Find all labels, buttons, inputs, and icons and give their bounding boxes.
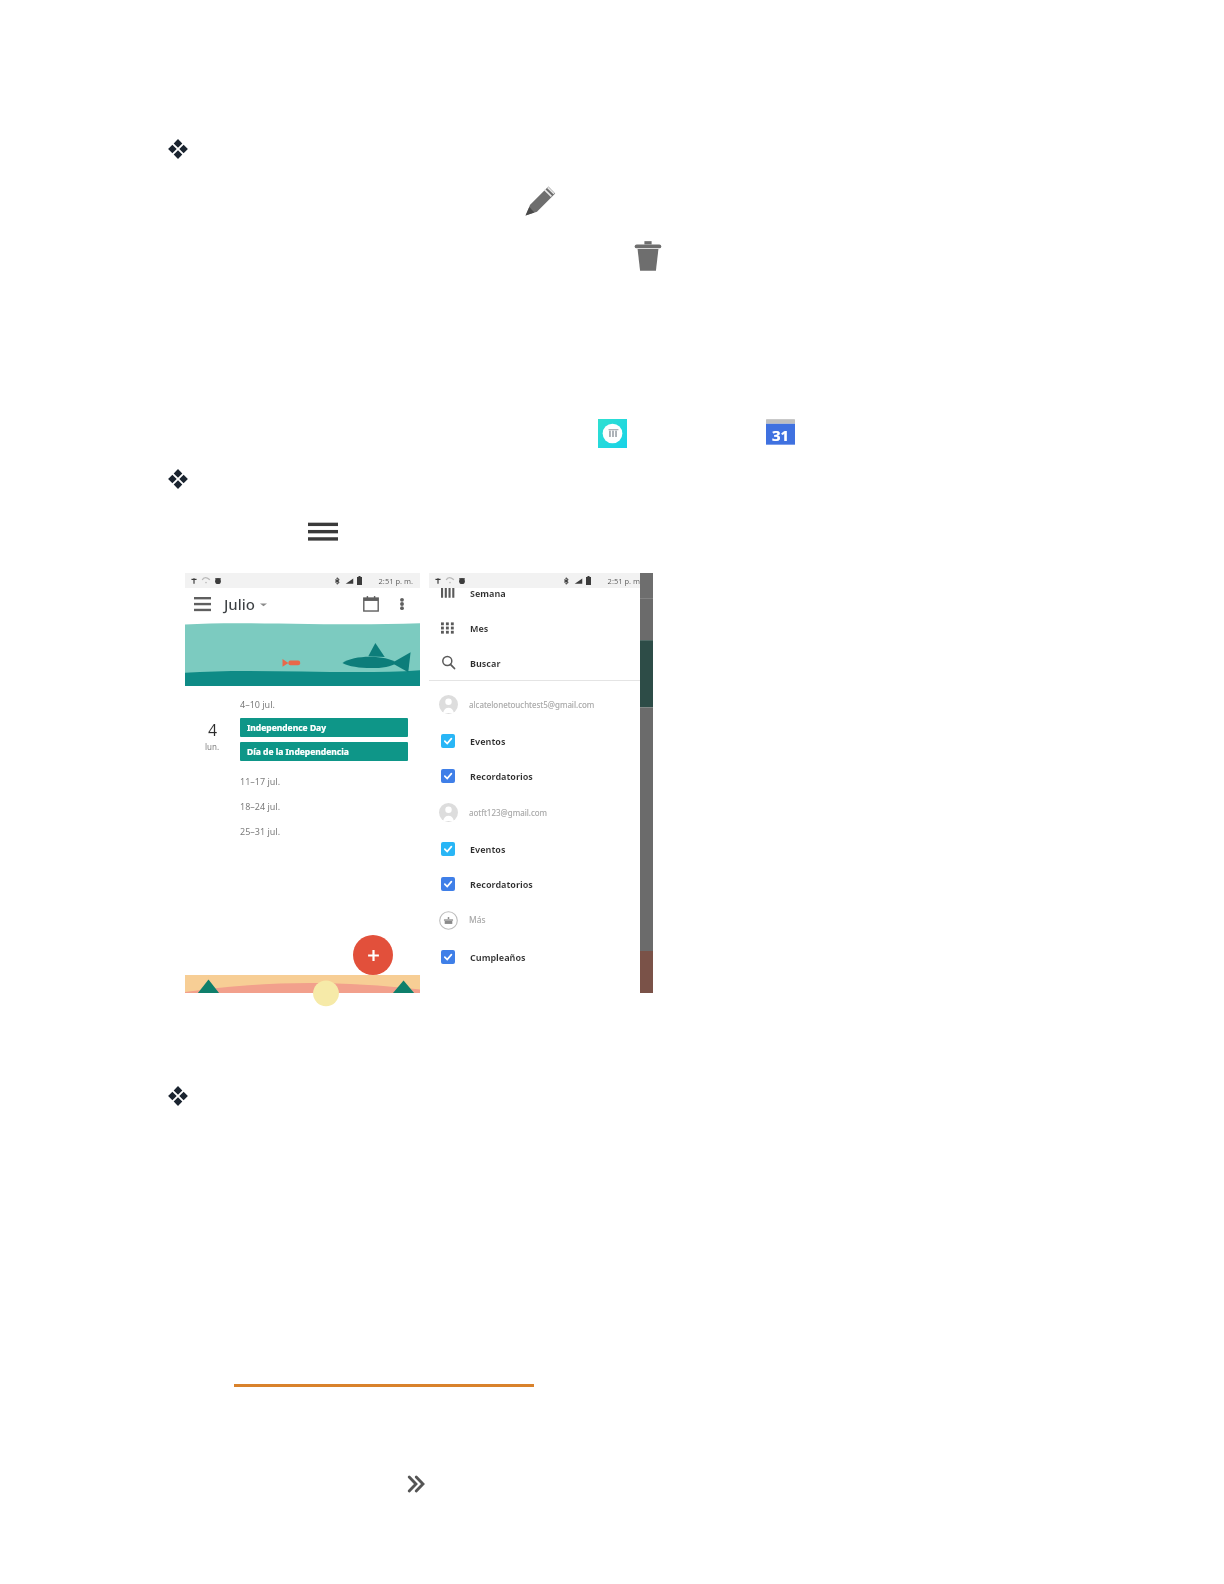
staticText: 25–31 jul.	[240, 825, 281, 837]
staticText: 4	[208, 719, 218, 741]
button[interactable]: Calendar app	[598, 419, 627, 448]
button[interactable]: Create event	[353, 935, 393, 975]
button[interactable]: Edit	[521, 182, 559, 220]
button[interactable]: Google Calendar	[766, 418, 795, 447]
button[interactable]: Independence Day	[240, 718, 408, 737]
button[interactable]: Recordatorios	[429, 758, 640, 793]
staticText: 2:51 p. m	[607, 576, 640, 586]
staticText: 2:51 p. m.	[378, 576, 413, 586]
staticText: Más	[469, 914, 486, 926]
button[interactable]: aotft123@gmail.com	[429, 793, 640, 831]
staticText: Semana	[470, 587, 506, 599]
staticText: aotft123@gmail.com	[469, 807, 548, 818]
staticText: Mes	[470, 622, 489, 634]
button[interactable]: Más	[429, 901, 640, 939]
button[interactable]: Semana	[429, 575, 640, 610]
staticText: alcatelonetouchtest5@gmail.com	[469, 699, 595, 710]
staticText: Eventos	[470, 735, 506, 747]
button[interactable]: Eventos	[429, 723, 640, 758]
button[interactable]: Recordatorios	[429, 866, 640, 901]
staticText: 4–10 jul.	[240, 698, 275, 710]
button[interactable]: Buscar	[429, 645, 640, 680]
staticText: Julio	[224, 594, 256, 614]
staticText: 31	[772, 425, 790, 445]
staticText: lun.	[205, 741, 220, 752]
staticText: 18–24 jul.	[240, 800, 281, 812]
button[interactable]: alcatelonetouchtest5@gmail.com	[429, 685, 640, 723]
button[interactable]: Mes	[429, 610, 640, 645]
button[interactable]: More options	[396, 596, 408, 612]
button[interactable]: Julio	[224, 594, 267, 614]
staticText: Día de la Independencia	[247, 746, 349, 758]
staticText: Recordatorios	[470, 770, 533, 782]
button[interactable]: Open navigation drawer	[194, 597, 211, 611]
staticText: 11–17 jul.	[240, 775, 281, 787]
staticText: Eventos	[470, 843, 506, 855]
button[interactable]: Día de la Independencia	[240, 742, 408, 761]
button[interactable]: Go to today	[362, 595, 380, 613]
staticText: Cumpleaños	[470, 951, 526, 963]
button[interactable]: Menu	[308, 518, 338, 544]
staticText: Buscar	[470, 657, 501, 669]
button[interactable]: Eventos	[429, 831, 640, 866]
button[interactable]: Delete	[630, 239, 666, 275]
staticText: Recordatorios	[470, 878, 533, 890]
button[interactable]: Cumpleaños	[429, 939, 640, 974]
staticText: Independence Day	[247, 722, 327, 734]
